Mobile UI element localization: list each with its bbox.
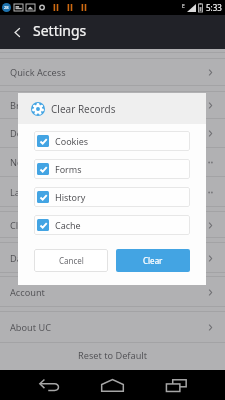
button[interactable]: Cancel [34, 249, 108, 272]
button[interactable]: Browser Settings [0, 92, 225, 119]
staticText: Clear Records [51, 102, 116, 116]
button[interactable]: Account [0, 277, 225, 307]
staticText: Language [10, 186, 53, 199]
button[interactable]: About UC [0, 312, 225, 343]
staticText: 5:33 [206, 2, 222, 13]
button[interactable]: Quick Access [0, 59, 225, 86]
staticText: Cancel [59, 255, 84, 266]
button[interactable]: Cache [34, 215, 190, 235]
staticText: Browser Settings [10, 99, 83, 112]
button[interactable]: Notifications [0, 148, 225, 177]
button[interactable]: Back [35, 372, 63, 398]
button[interactable]: Clear [116, 249, 190, 272]
staticText: Forms [55, 163, 82, 175]
button[interactable]: Download Settings [0, 119, 225, 148]
staticText: About UC [10, 321, 51, 334]
staticText: Account [10, 286, 45, 299]
button[interactable]: Recent apps [162, 372, 190, 398]
button[interactable]: Home [98, 372, 126, 398]
button[interactable]: Language [0, 177, 225, 207]
staticText: Clear [143, 255, 163, 266]
staticText: Quick Access [10, 66, 66, 79]
staticText: Clear Records [10, 219, 70, 232]
staticText: E [182, 3, 185, 10]
button[interactable]: Cookies [34, 131, 190, 151]
button[interactable]: Forms [34, 159, 190, 179]
staticText: 28 [4, 5, 9, 10]
button[interactable]: Back [4, 19, 30, 45]
staticText: Cache [55, 219, 81, 231]
staticText: Data Saving [10, 252, 62, 265]
button[interactable]: Clear Records [0, 212, 225, 238]
staticText: Cookies [55, 135, 89, 147]
button[interactable]: History [34, 187, 190, 207]
staticText: Notifications [10, 156, 65, 169]
staticText: History [55, 191, 86, 203]
staticText: Settings [33, 21, 87, 40]
staticText: Reset to Default [78, 349, 148, 362]
staticText: Download Settings [10, 127, 92, 140]
button[interactable]: Data Saving [0, 243, 225, 273]
